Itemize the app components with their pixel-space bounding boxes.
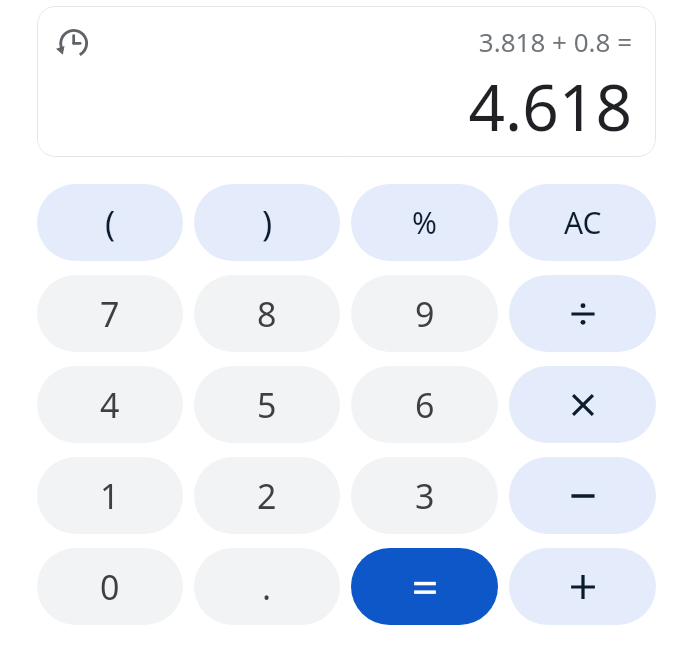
button[interactable]: 7 (37, 275, 183, 352)
button[interactable]: 9 (351, 275, 498, 352)
staticText: 9 (415, 291, 435, 337)
staticText: ) (262, 200, 273, 246)
staticText: 3 (415, 473, 435, 519)
staticText: 6 (415, 382, 435, 428)
button[interactable]: 8 (194, 275, 340, 352)
button[interactable]: All clear (509, 184, 656, 261)
staticText: 2 (257, 473, 277, 519)
button[interactable]: Right parenthesis (194, 184, 340, 261)
button[interactable]: 4 (37, 366, 183, 443)
staticText: 7 (100, 291, 120, 337)
staticText: . (262, 564, 272, 610)
button[interactable]: Add (509, 548, 656, 625)
button[interactable]: Subtract (509, 457, 656, 534)
staticText: % (412, 202, 437, 243)
staticText: AC (564, 202, 602, 243)
button[interactable]: Equals (351, 548, 498, 625)
staticText: 3.818 + 0.8 = (478, 24, 632, 59)
button[interactable]: Percent (351, 184, 498, 261)
staticText: 8 (257, 291, 277, 337)
staticText: 4.618 (468, 63, 632, 150)
button[interactable]: 6 (351, 366, 498, 443)
button[interactable]: Left parenthesis (37, 184, 183, 261)
staticText: 4 (100, 382, 120, 428)
staticText: 0 (100, 564, 120, 610)
staticText: 1 (100, 473, 120, 519)
button[interactable]: History (45, 14, 101, 70)
staticText: ( (105, 200, 116, 246)
button[interactable]: 3 (351, 457, 498, 534)
staticText: 5 (257, 382, 277, 428)
button[interactable]: 5 (194, 366, 340, 443)
button[interactable]: Divide (509, 275, 656, 352)
button[interactable]: 1 (37, 457, 183, 534)
button[interactable]: Multiply (509, 366, 656, 443)
button[interactable]: 2 (194, 457, 340, 534)
button[interactable]: Decimal point (194, 548, 340, 625)
button[interactable]: 0 (37, 548, 183, 625)
